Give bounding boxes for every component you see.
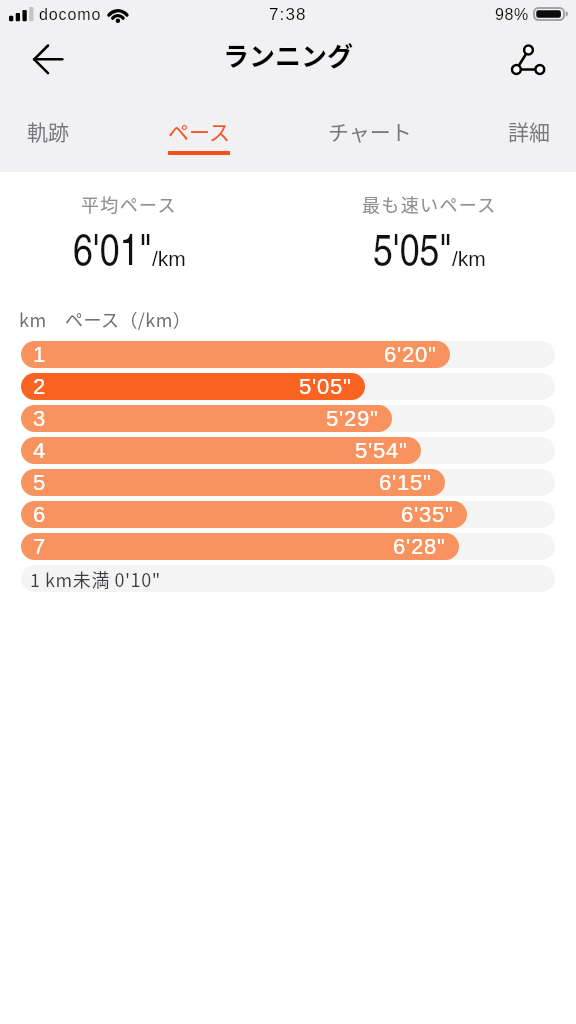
staticText: /km bbox=[452, 247, 486, 270]
button[interactable]: 5 bbox=[21, 469, 555, 501]
button[interactable]: チャート bbox=[328, 94, 409, 146]
button[interactable]: 軌跡 bbox=[27, 94, 69, 146]
staticText: 6'01" bbox=[73, 218, 152, 278]
button[interactable]: Share bbox=[501, 38, 553, 90]
button[interactable]: 6 bbox=[21, 501, 555, 533]
staticText: 2 bbox=[33, 374, 46, 399]
button[interactable]: 7 bbox=[21, 533, 555, 565]
staticText: 5'54" bbox=[355, 438, 408, 463]
staticText: 6'20" bbox=[384, 342, 437, 367]
button[interactable]: ペース bbox=[168, 94, 230, 155]
staticText: 最も速いペース bbox=[362, 191, 497, 217]
button[interactable]: 3 bbox=[21, 405, 555, 437]
staticText: 98% bbox=[495, 6, 529, 24]
staticText: 平均ペース bbox=[81, 191, 177, 217]
staticText: docomo bbox=[39, 6, 102, 24]
staticText: 5'29" bbox=[326, 406, 379, 431]
staticText: 詳細 bbox=[508, 116, 549, 146]
button[interactable]: 4 bbox=[21, 437, 555, 469]
staticText: 1 bbox=[33, 342, 46, 367]
staticText: 5 bbox=[33, 470, 46, 495]
staticText: 6'28" bbox=[393, 534, 446, 559]
staticText: 7 bbox=[33, 534, 46, 559]
staticText: 5'05" bbox=[299, 374, 352, 399]
staticText: ランニング bbox=[223, 36, 354, 74]
staticText: 6 bbox=[33, 502, 46, 527]
staticText: km ペース（/km） bbox=[19, 306, 192, 332]
button[interactable]: Back bbox=[16, 38, 80, 90]
staticText: 4 bbox=[33, 438, 46, 463]
button[interactable]: 1 bbox=[21, 341, 555, 373]
staticText: 1 km未満 0'10" bbox=[30, 566, 161, 592]
staticText: チャート bbox=[328, 116, 409, 146]
button[interactable]: 1 km未満 0'10" bbox=[21, 565, 555, 597]
staticText: 7:38 bbox=[269, 5, 307, 24]
staticText: ペース bbox=[168, 116, 230, 146]
button[interactable]: 2 bbox=[21, 373, 555, 405]
staticText: 5'05" bbox=[373, 218, 452, 278]
staticText: 6'35" bbox=[401, 502, 454, 527]
button[interactable]: 詳細 bbox=[508, 94, 549, 146]
staticText: 3 bbox=[33, 406, 46, 431]
staticText: /km bbox=[152, 247, 186, 270]
staticText: 軌跡 bbox=[27, 116, 69, 146]
staticText: 6'15" bbox=[379, 470, 432, 495]
